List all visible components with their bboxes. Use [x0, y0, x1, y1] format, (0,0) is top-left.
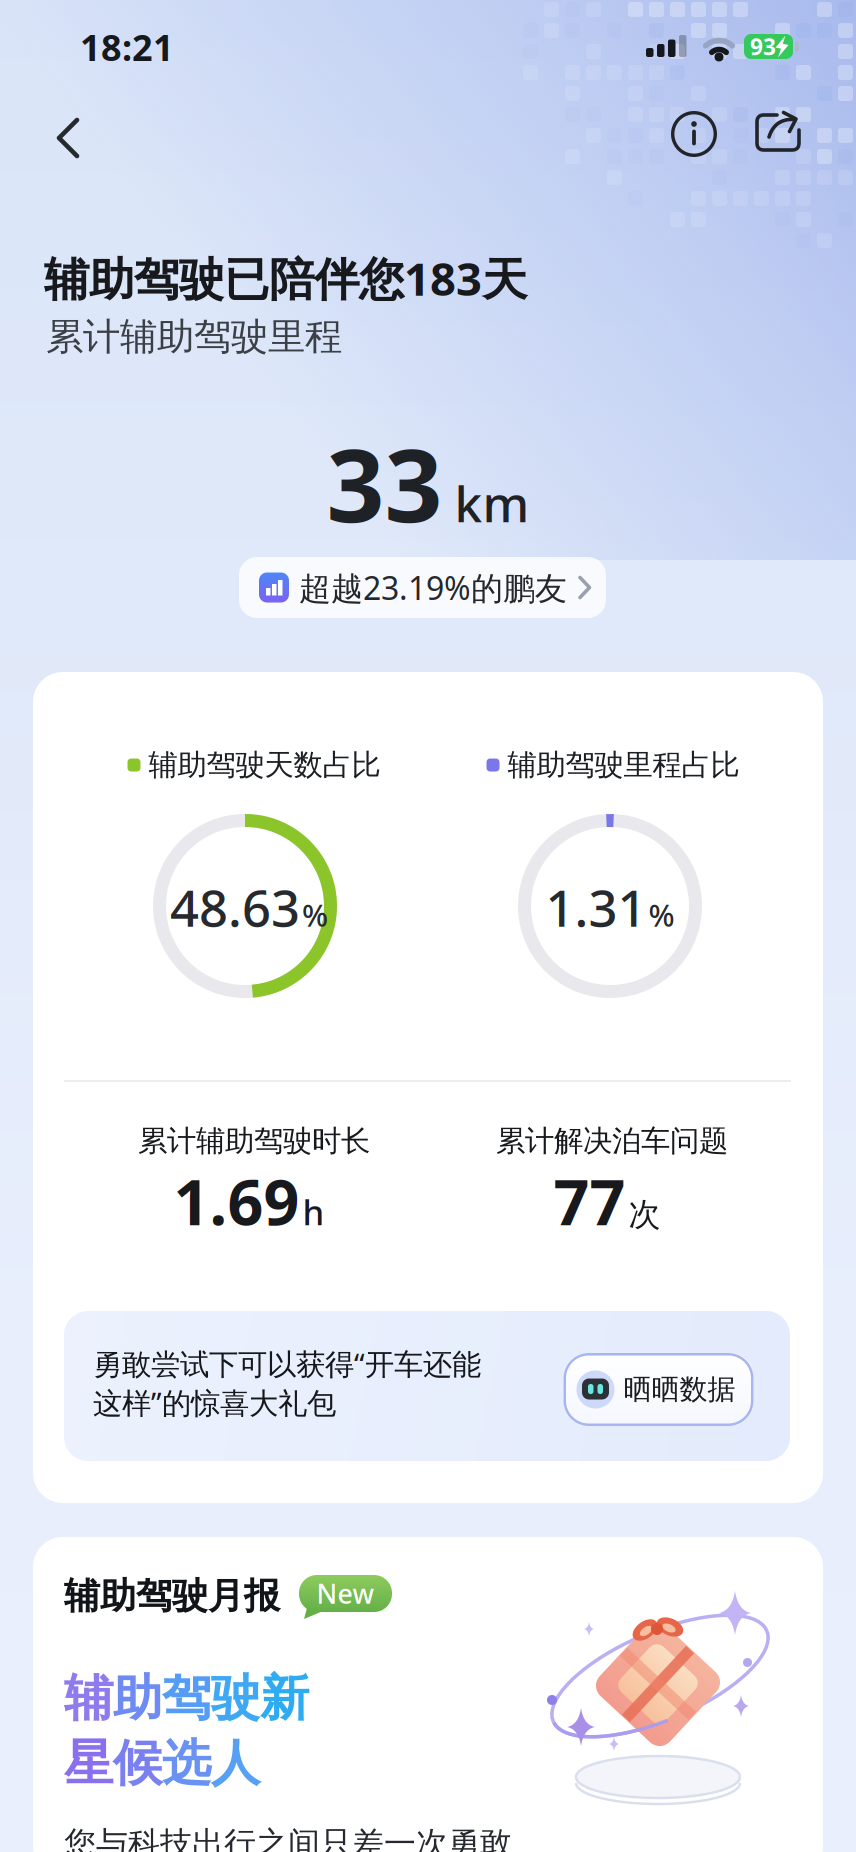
staticText: 驾 [162, 1668, 211, 1729]
staticText: 助 [113, 1668, 162, 1729]
staticText: 星 [64, 1733, 113, 1794]
staticText: % [648, 894, 674, 935]
button[interactable]: 晒晒数据 [563, 1353, 753, 1426]
staticText: 辅 [64, 1668, 113, 1729]
button[interactable]: Info [670, 110, 718, 158]
staticText: 超越23.19%的鹏友 [299, 566, 567, 609]
staticText: 驶 [211, 1668, 260, 1729]
staticText: 1.31 [545, 873, 646, 941]
staticText: 77 [553, 1159, 625, 1243]
staticText: 次 [628, 1195, 660, 1234]
staticText: 1.69 [173, 1159, 299, 1243]
staticText: 辅助驾驶里程占比 [507, 747, 739, 783]
staticText: 18:21 [80, 23, 174, 71]
staticText: % [302, 894, 328, 935]
button[interactable]: 辅助驾驶月报 [33, 1537, 823, 1852]
staticText: 48.63 [170, 873, 300, 941]
button[interactable]: 超越23.19%的鹏友 [239, 557, 606, 618]
staticText: 33 [326, 416, 442, 550]
staticText: 累计解决泊车问题 [496, 1123, 728, 1159]
staticText: 勇敢尝试下可以获得“开车还能 这样”的惊喜大礼包 [93, 1344, 481, 1422]
staticText: 93 [750, 31, 776, 61]
staticText: h [302, 1189, 324, 1235]
staticText: 选 [162, 1733, 211, 1794]
staticText: 辅助驾驶已陪伴您183天 [44, 248, 527, 308]
staticText: 新 [260, 1668, 309, 1729]
staticText: 累计辅助驾驶里程 [46, 314, 342, 360]
staticText: 候 [113, 1733, 162, 1794]
staticText: New [316, 1576, 374, 1611]
staticText: 辅助驾驶月报 [64, 1574, 280, 1618]
staticText: 累计辅助驾驶时长 [138, 1123, 370, 1159]
staticText: 辅助驾驶天数占比 [148, 747, 380, 783]
staticText: 您与科技出行之间只差一次勇敢 [64, 1824, 512, 1852]
staticText: km [454, 470, 529, 536]
button[interactable]: Share [753, 108, 803, 156]
button[interactable]: Back [52, 116, 88, 160]
staticText: 人 [211, 1733, 260, 1794]
staticText: 晒晒数据 [623, 1372, 735, 1407]
